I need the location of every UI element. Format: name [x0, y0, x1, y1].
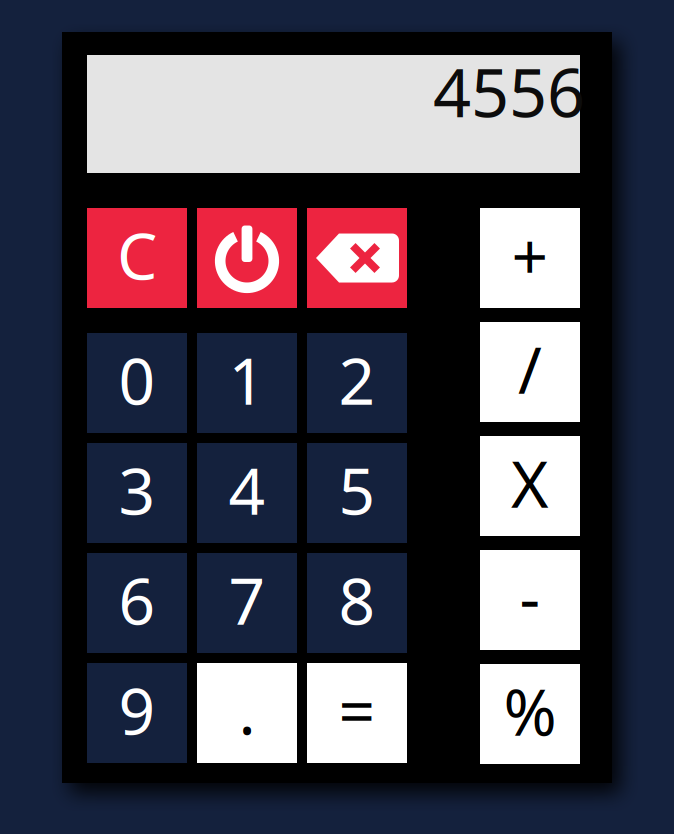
button[interactable]: 5 [307, 443, 407, 543]
button[interactable]: 6 [87, 553, 187, 653]
staticText: + [511, 212, 548, 297]
staticText: 4556 [433, 47, 585, 135]
button[interactable]: - [480, 550, 580, 650]
staticText: 1 [228, 337, 265, 422]
staticText: 9 [118, 667, 155, 752]
staticText: 0 [118, 337, 155, 422]
staticText: 6 [118, 557, 155, 642]
staticText: 2 [338, 337, 375, 422]
button[interactable]: = [307, 663, 407, 763]
button[interactable]: X [480, 436, 580, 536]
staticText: = [338, 667, 375, 752]
button[interactable]: + [480, 208, 580, 308]
button[interactable]: 1 [197, 333, 297, 433]
button[interactable]: 0 [87, 333, 187, 433]
button[interactable]: / [480, 322, 580, 422]
staticText: . [238, 667, 255, 752]
button[interactable]: . [197, 663, 297, 763]
button[interactable]: 8 [307, 553, 407, 653]
staticText: X [511, 440, 549, 525]
button[interactable]: 7 [197, 553, 297, 653]
button[interactable]: 4 [197, 443, 297, 543]
button[interactable]: % [480, 664, 580, 764]
staticText: 7 [228, 557, 265, 642]
button[interactable]: Power [197, 208, 297, 308]
button[interactable]: 3 [87, 443, 187, 543]
staticText: C [117, 212, 157, 297]
staticText: 5 [338, 447, 375, 532]
button[interactable]: C [87, 208, 187, 308]
staticText: - [519, 554, 540, 639]
staticText: 4 [228, 447, 265, 532]
staticText: 3 [118, 447, 155, 532]
button[interactable]: 9 [87, 663, 187, 763]
staticText: 8 [338, 557, 375, 642]
staticText: % [503, 668, 556, 753]
staticText: / [518, 326, 542, 411]
button[interactable]: Delete [307, 208, 407, 308]
button[interactable]: 2 [307, 333, 407, 433]
